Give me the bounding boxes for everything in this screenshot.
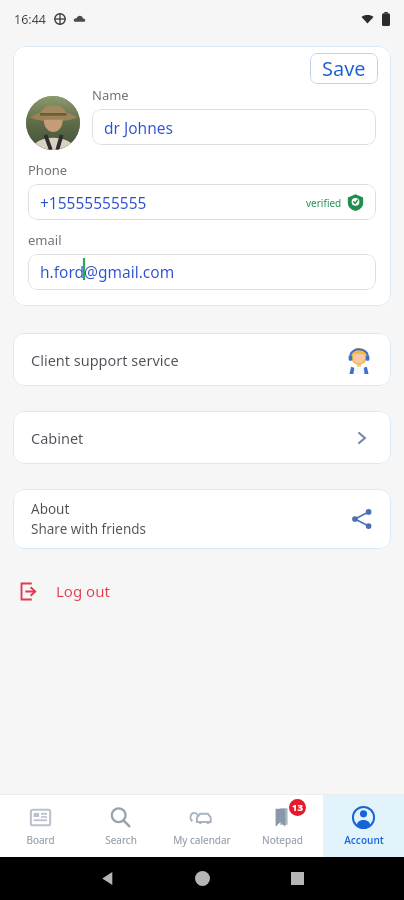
button[interactable]: dr Johnes [92, 109, 376, 145]
button[interactable]: Cabinet [13, 411, 391, 464]
staticText: dr Johnes [104, 117, 173, 138]
button[interactable]: My calendar [161, 795, 242, 857]
button[interactable]: About [13, 489, 391, 549]
button[interactable]: h.ford@gmail.com [28, 254, 376, 290]
button[interactable]: Board [0, 795, 80, 857]
staticText: Cabinet [31, 428, 84, 448]
staticText: email [28, 231, 62, 249]
staticText: Notepad [262, 833, 303, 847]
button[interactable]: +15555555555 [28, 184, 376, 220]
button[interactable]: Back [60, 871, 155, 886]
staticText: My calendar [173, 833, 231, 847]
button[interactable]: Client support service [13, 333, 391, 386]
staticText: 16:44 [14, 11, 46, 28]
staticText: Board [26, 833, 55, 847]
button[interactable]: Search [80, 795, 161, 857]
button[interactable]: Account [323, 795, 404, 857]
staticText: Client support service [31, 350, 179, 370]
button[interactable]: Log out [16, 575, 114, 607]
staticText: Phone [28, 161, 68, 179]
button[interactable]: Save [310, 53, 378, 84]
staticText: 13 [292, 801, 303, 814]
staticText: verified [306, 196, 342, 210]
other: Account [352, 806, 375, 829]
staticText: +15555555555 [40, 192, 147, 213]
other: Log out [20, 582, 39, 601]
other: Notepad [271, 806, 294, 829]
staticText: h.ford@gmail.com [40, 261, 175, 282]
staticText: Share with friends [31, 520, 147, 538]
other: My calendar [190, 806, 213, 829]
staticText: Search [105, 833, 137, 847]
button[interactable]: Recents [250, 872, 345, 885]
other: Open Cabinet [353, 429, 371, 447]
other: Verified [347, 194, 364, 211]
staticText: About [31, 500, 70, 518]
button[interactable]: Notepad [242, 795, 323, 857]
other: Share [351, 508, 373, 530]
other: Search [109, 806, 132, 829]
button[interactable]: Home [155, 871, 250, 886]
staticText: Account [344, 833, 384, 847]
staticText: Name [92, 86, 129, 104]
other: Board [29, 806, 52, 829]
staticText: Save [322, 55, 366, 82]
other: Support agent [345, 346, 373, 374]
staticText: Log out [56, 581, 110, 601]
